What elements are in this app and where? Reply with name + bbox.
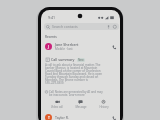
staticText: New bbox=[78, 58, 84, 62]
other: Account bbox=[113, 25, 117, 29]
staticText: Video call bbox=[51, 105, 63, 109]
button[interactable]: J bbox=[41, 41, 120, 52]
other: Call bbox=[112, 45, 116, 49]
other: Call bbox=[112, 116, 116, 120]
staticText: Mobile · last bbox=[55, 47, 73, 51]
staticText: Jane Sherbert bbox=[55, 42, 79, 47]
button[interactable]: Video call bbox=[45, 100, 69, 109]
staticText: Search contacts bbox=[52, 24, 78, 29]
staticText: J bbox=[48, 44, 50, 49]
staticText: Recents bbox=[45, 35, 57, 39]
staticText: 9:41 bbox=[48, 15, 56, 20]
button[interactable]: Call summary bbox=[46, 57, 85, 62]
staticText: Message bbox=[75, 105, 87, 109]
staticText: Call Notes are generated by AI and may b… bbox=[49, 90, 105, 97]
button[interactable]: Search contacts bbox=[44, 23, 119, 30]
staticText: History bbox=[99, 105, 109, 109]
staticText: Call summary bbox=[51, 57, 75, 62]
staticText: Taylor R. bbox=[55, 115, 69, 120]
button[interactable]: T bbox=[41, 113, 120, 120]
staticText: A call to ask about a financial matter. … bbox=[45, 63, 106, 85]
button[interactable]: History bbox=[92, 100, 115, 109]
button[interactable]: Message bbox=[69, 100, 92, 109]
other: Voice search bbox=[107, 25, 110, 29]
staticText: T bbox=[48, 115, 50, 120]
